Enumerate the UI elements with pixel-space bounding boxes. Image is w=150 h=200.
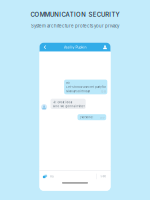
staticText: Send <box>100 175 105 178</box>
staticText: Hi! <box>66 81 70 85</box>
staticText: Hi! Great idea! <box>53 101 73 104</box>
staticText: Let's throw a secret party for <box>66 85 106 89</box>
staticText: 12:05 <box>101 90 106 93</box>
staticText: 12:07 <box>100 116 105 119</box>
staticText: Aa <box>50 175 54 178</box>
staticText: Nikolay's birthday! <box>66 90 90 93</box>
staticText: Everyone! <box>79 116 93 119</box>
button[interactable]: Contact info <box>102 45 107 50</box>
staticText: 12:07 <box>79 105 84 108</box>
staticText: Vasiliy Pupkin <box>63 45 86 49</box>
button[interactable]: Attach photo <box>43 173 47 180</box>
button[interactable]: Send <box>100 173 106 180</box>
button[interactable]: Back <box>42 43 47 51</box>
staticText: Who we gonna invite? <box>53 105 85 108</box>
staticText: System architecture protects your privac… <box>31 23 119 29</box>
staticText: COMMUNICATION SECURITY <box>30 11 120 18</box>
